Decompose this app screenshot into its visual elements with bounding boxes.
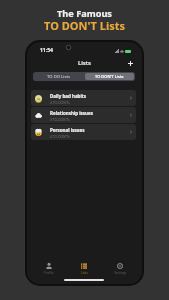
- staticText: TO DO Lists: [47, 74, 71, 80]
- staticText: 3 TO-DON'Ts: [50, 117, 70, 121]
- button[interactable]: TO DO Lists: [33, 72, 84, 81]
- button[interactable]: TO DON'T Lists: [85, 73, 134, 80]
- staticText: Relationship issues: [50, 110, 93, 116]
- staticText: Profile: [44, 271, 54, 275]
- staticText: Lists: [81, 271, 88, 275]
- staticText: TO DON'T Lists: [95, 74, 124, 79]
- button[interactable]: Lists: [66, 257, 102, 275]
- staticText: 11:54: [40, 47, 53, 54]
- staticText: TO DON'T Lists: [44, 18, 125, 33]
- staticText: 4 TO-DON'Ts: [50, 134, 70, 138]
- button[interactable]: Personal issues: [31, 124, 136, 140]
- staticText: 4 TO-DON'Ts: [50, 100, 70, 104]
- staticText: Personal issues: [50, 127, 85, 133]
- staticText: Lists: [78, 59, 91, 67]
- button[interactable]: Profile: [31, 257, 66, 275]
- staticText: Settings: [114, 271, 127, 275]
- button[interactable]: Add list: [125, 58, 135, 68]
- button[interactable]: Relationship issues: [31, 107, 136, 123]
- button[interactable]: Daily bad habits: [31, 90, 136, 106]
- staticText: Daily bad habits: [50, 93, 86, 99]
- staticText: The Famous: [57, 7, 112, 20]
- button[interactable]: Settings: [102, 257, 138, 275]
